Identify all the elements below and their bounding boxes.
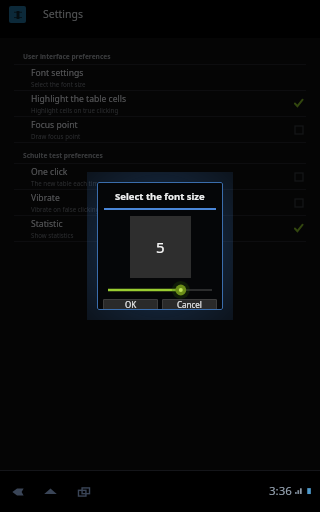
staticText: User interface preferences [23,52,111,61]
staticText: One click [31,166,68,178]
button[interactable]: Font size slider [108,284,212,296]
staticText: Vibrate [31,192,60,204]
staticText: Highlight the table cells [31,93,127,105]
staticText: Highlight cells on true clicking [31,106,119,114]
staticText: 5 [156,237,165,257]
button[interactable]: Cancel [162,299,217,310]
button[interactable]: One click [0,164,320,189]
staticText: Schulte test preferences [23,151,103,160]
staticText: The new table each time [31,179,102,187]
staticText: Draw focus point [31,132,81,140]
button[interactable]: Home [42,483,59,500]
button[interactable]: Focus point [0,117,320,142]
button[interactable]: Highlight the table cells [0,91,320,116]
button[interactable]: Font settings [0,65,320,90]
staticText: OK [125,299,137,310]
button[interactable]: Back [9,483,26,500]
button[interactable]: OK [103,299,158,310]
staticText: Cancel [177,299,202,310]
staticText: Statistic [31,218,63,230]
staticText: Select the font size [31,80,86,88]
button[interactable]: Statistic [0,216,320,241]
button[interactable]: Recent apps [75,483,92,500]
staticText: Font settings [31,67,84,79]
button[interactable]: App icon, navigate up [9,6,26,23]
staticText: Focus point [31,119,78,131]
staticText: 3:36 [269,483,292,499]
staticText: Vibrate on false clicking [31,205,100,213]
staticText: Settings [43,7,83,21]
staticText: Select the font size [115,190,205,203]
staticText: Show statistics [31,231,74,239]
button[interactable]: Vibrate [0,190,320,215]
